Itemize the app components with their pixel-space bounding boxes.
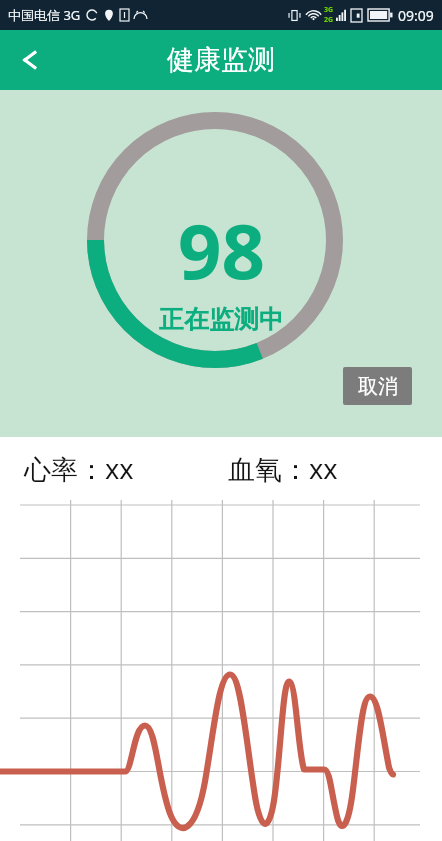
staticText: 98 <box>178 198 265 302</box>
button[interactable]: Back <box>0 30 60 90</box>
staticText: 正在监测中 <box>159 304 284 335</box>
staticText: 健康监测 <box>167 43 275 77</box>
staticText: 2G <box>324 15 334 25</box>
staticText: 取消 <box>358 374 398 399</box>
staticText: 中国电信 3G <box>8 6 81 24</box>
staticText: 心率：xx <box>24 450 134 487</box>
button[interactable]: 取消 <box>343 367 412 405</box>
staticText: 3G <box>324 5 334 15</box>
staticText: 血氧：xx <box>228 450 338 487</box>
staticText: 09:09 <box>398 6 434 25</box>
